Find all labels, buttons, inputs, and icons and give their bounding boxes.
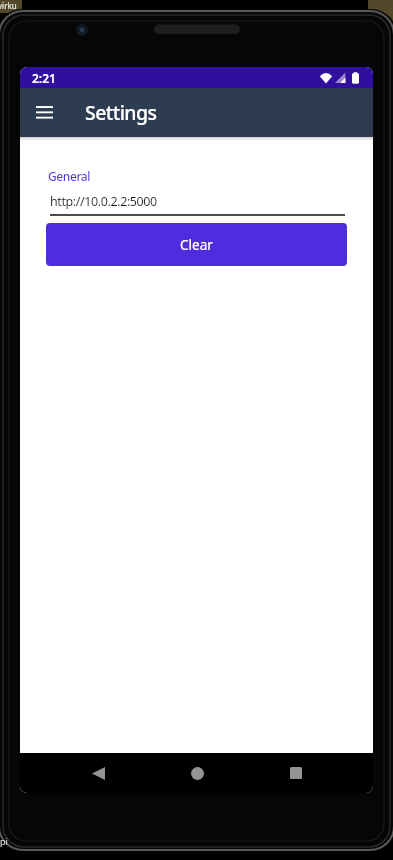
staticText: Settings	[85, 99, 157, 126]
button[interactable]	[177, 753, 217, 793]
button[interactable]	[78, 753, 118, 793]
staticText: Clear	[180, 236, 213, 254]
staticText: 2:21	[32, 70, 56, 86]
staticText: pi	[0, 835, 8, 847]
staticText: virku	[0, 0, 17, 11]
button[interactable]	[20, 88, 69, 137]
staticText: http://10.0.2.2:5000	[50, 193, 157, 210]
button[interactable]	[276, 753, 316, 793]
staticText: General	[48, 168, 91, 184]
button[interactable]: http://10.0.2.2:5000	[50, 193, 345, 216]
button[interactable]: Clear	[46, 223, 347, 266]
